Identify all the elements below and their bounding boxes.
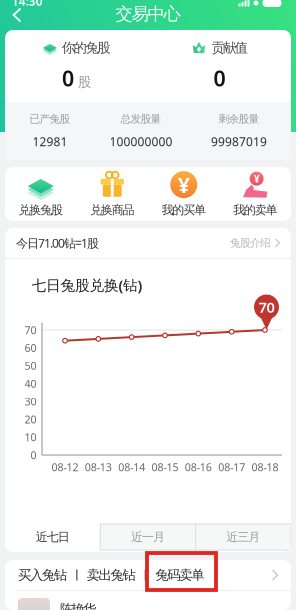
button[interactable]: 陈艳华 [5, 591, 291, 610]
staticText: 08-14 [118, 460, 145, 474]
button[interactable]: 今日71.00钻=1股 [5, 228, 291, 258]
staticText: 99987019 [211, 134, 267, 149]
staticText: 0 [213, 64, 225, 92]
staticText: 交易中心 [115, 3, 180, 25]
staticText: 60 [24, 341, 36, 355]
staticText: 70 [24, 323, 36, 337]
staticText: 10 [24, 430, 36, 444]
staticText: 陈艳华 [60, 601, 96, 610]
staticText: 近七日 [36, 530, 70, 544]
button[interactable]: 近一月 [100, 524, 196, 550]
button[interactable]: 你的兔股 [5, 30, 148, 102]
staticText: ¥ [254, 172, 260, 186]
button[interactable]: ¥ [148, 167, 219, 221]
staticText: ¥ [178, 170, 190, 199]
staticText: 40 [24, 376, 36, 391]
staticText: 今日71.00钻=1股 [16, 235, 99, 251]
staticText: 兔码卖单 [155, 567, 204, 583]
staticText: 兑换商品 [90, 203, 134, 217]
staticText: 100000000 [109, 134, 172, 149]
button[interactable]: ¥ [219, 167, 291, 221]
button[interactable]: 买入兔钻 [5, 560, 67, 590]
staticText: 70 [258, 297, 274, 317]
staticText: 兑换兔股 [19, 203, 63, 217]
staticText: 七日兔股兑换(钻) [31, 275, 142, 295]
staticText: 14:30 [11, 0, 42, 9]
staticText: 30 [24, 394, 36, 408]
staticText: 我的买单 [162, 203, 206, 217]
staticText: 兔股介绍 [230, 236, 271, 249]
button[interactable]: 兔码卖单 [155, 560, 204, 590]
staticText: 买入兔钻 [18, 567, 67, 583]
staticText: 08-12 [51, 460, 78, 474]
staticText: 剩余股量 [218, 112, 259, 126]
staticText: 卖出兔钻 [87, 567, 136, 583]
staticText: 你的兔股 [62, 40, 110, 56]
button[interactable]: 兑换商品 [76, 167, 148, 221]
staticText: 0 [62, 64, 74, 92]
staticText: 08-15 [151, 460, 178, 474]
staticText: 08-16 [185, 460, 212, 474]
button[interactable]: 近七日 [5, 524, 100, 550]
staticText: 08-17 [218, 460, 245, 474]
staticText: 08-13 [85, 460, 112, 474]
staticText: 近三月 [226, 530, 260, 544]
button[interactable]: 贡献值 [148, 30, 291, 102]
staticText: 已产兔股 [29, 112, 70, 126]
staticText: 贡献值 [211, 40, 247, 56]
button[interactable]: 近三月 [196, 524, 291, 550]
button[interactable]: 兑换兔股 [5, 167, 76, 221]
staticText: 我的卖单 [233, 203, 277, 217]
staticText: 20 [24, 412, 36, 426]
staticText: 0 [30, 448, 36, 462]
staticText: 股 [78, 74, 91, 90]
staticText: 08-18 [251, 460, 278, 474]
staticText: 50 [24, 359, 36, 373]
button[interactable]: 卖出兔钻 [87, 560, 136, 590]
staticText: 12981 [32, 134, 67, 149]
button[interactable]: Back [2, 1, 30, 28]
staticText: 近一月 [131, 530, 165, 544]
button[interactable]: More [272, 560, 291, 590]
staticText: 总发股量 [120, 112, 161, 126]
